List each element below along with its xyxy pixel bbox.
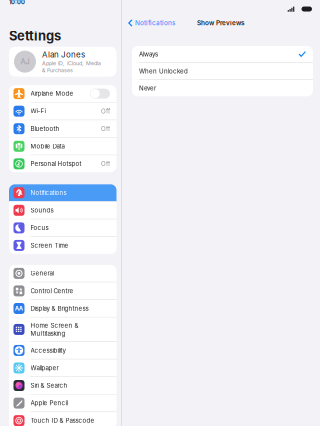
button[interactable]: Personal Hotspot [9,155,116,172]
button[interactable]: Notifications [9,184,116,201]
staticText: Settings [9,28,61,44]
staticText: General [30,270,53,277]
staticText: Multitasking [30,330,65,337]
staticText: Off [101,125,110,132]
button[interactable]: Apple Pencil [9,395,116,411]
staticText: Notifications [135,19,175,27]
button[interactable]: Always [132,46,313,62]
staticText: Sounds [30,207,53,214]
button[interactable]: Accessibility [9,342,116,359]
button[interactable]: Focus [9,219,116,236]
staticText: Bluetooth [30,125,59,132]
button[interactable]: Touch ID & Passcode [9,412,116,426]
button[interactable]: Airplane Mode [9,85,116,102]
staticText: Siri & Search [30,382,67,389]
staticText: Off [101,107,110,115]
staticText: Wi-Fi [30,107,45,115]
staticText: Apple ID, iCloud, Media [42,60,101,66]
button[interactable]: Mobile Data [9,138,116,155]
staticText: Wallpaper [30,364,58,372]
button[interactable]: Screen Time [9,237,116,254]
staticText: Always [139,50,158,58]
staticText: AA [15,305,23,312]
staticText: Never [139,84,156,92]
button[interactable]: Never [132,80,313,96]
button[interactable]: Siri & Search [9,377,116,394]
button[interactable]: When Unlocked [132,63,313,79]
button[interactable]: Sounds [9,202,116,219]
staticText: 10:00 [9,0,25,6]
button[interactable]: Control Centre [9,282,116,299]
staticText: Airplane Mode [30,90,73,97]
staticText: Accessibility [30,347,65,354]
staticText: When Unlocked [139,67,188,75]
staticText: Notifications [30,189,66,196]
staticText: Mobile Data [30,143,64,150]
staticText: Personal Hotspot [30,160,81,167]
staticText: Alan Jones [42,50,85,60]
staticText: Home Screen & [30,322,78,329]
staticText: Touch ID & Passcode [30,417,94,424]
staticText: Display & Brightness [30,305,88,312]
staticText: AJ [20,57,29,66]
button[interactable]: Wallpaper [9,359,116,376]
button[interactable]: Wi-Fi [9,103,116,120]
button[interactable]: General [9,265,116,282]
staticText: Focus [30,224,48,232]
button[interactable]: Notifications [122,15,175,31]
staticText: Show Previews [197,19,245,27]
staticText: Apple Pencil [30,399,67,407]
staticText: Screen Time [30,242,68,249]
staticText: Control Centre [30,287,73,295]
staticText: & Purchases [42,67,73,73]
button[interactable]: AA [9,300,116,317]
button[interactable]: AJ [9,47,116,77]
button[interactable]: Home Screen & [9,317,116,341]
button[interactable]: Bluetooth [9,120,116,137]
staticText: Off [101,160,110,167]
